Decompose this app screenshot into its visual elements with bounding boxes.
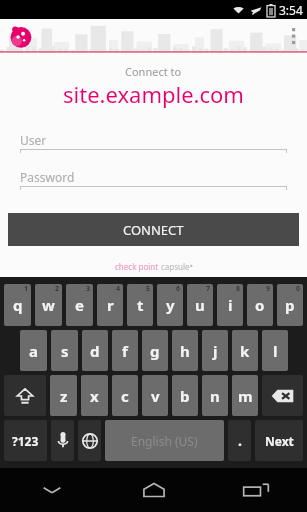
- staticText: 7: [206, 284, 211, 294]
- staticText: q: [13, 295, 23, 315]
- staticText: ?123: [12, 433, 39, 449]
- button[interactable]: f: [112, 330, 138, 371]
- staticText: r: [107, 295, 114, 315]
- button[interactable]: n: [202, 375, 228, 416]
- button[interactable]: v: [142, 375, 168, 416]
- staticText: w: [42, 295, 55, 315]
- staticText: i: [228, 295, 233, 315]
- staticText: 0: [296, 284, 301, 294]
- staticText: s: [61, 341, 69, 361]
- button[interactable]: l: [262, 330, 288, 371]
- button[interactable]: Password: [20, 167, 287, 191]
- button[interactable]: c: [112, 375, 138, 416]
- staticText: o: [255, 295, 265, 315]
- staticText: x: [90, 386, 99, 406]
- staticText: 1: [24, 284, 29, 294]
- staticText: 4: [116, 284, 121, 294]
- staticText: b: [180, 386, 190, 406]
- staticText: 8: [236, 284, 241, 294]
- staticText: f: [122, 341, 128, 361]
- staticText: 3: [86, 284, 91, 294]
- staticText: m: [238, 386, 253, 406]
- staticText: y: [166, 295, 175, 315]
- staticText: •: [190, 262, 193, 272]
- staticText: u: [195, 295, 205, 315]
- button[interactable]: g: [142, 330, 168, 371]
- button[interactable]: Change language: [78, 420, 101, 461]
- staticText: 3:54: [279, 2, 303, 18]
- button[interactable]: k: [232, 330, 258, 371]
- staticText: l: [273, 341, 278, 361]
- staticText: p: [285, 295, 295, 315]
- staticText: c: [121, 386, 129, 406]
- button[interactable]: CONNECT: [8, 213, 299, 246]
- button[interactable]: u: [187, 284, 213, 326]
- button[interactable]: b: [172, 375, 198, 416]
- staticText: j: [213, 341, 218, 361]
- staticText: z: [60, 386, 68, 406]
- button[interactable]: w: [35, 284, 62, 326]
- staticText: v: [151, 386, 160, 406]
- button[interactable]: o: [247, 284, 273, 326]
- staticText: Connect to: [125, 64, 182, 79]
- button[interactable]: s: [51, 330, 78, 371]
- staticText: d: [90, 341, 100, 361]
- staticText: CONNECT: [123, 221, 184, 239]
- button[interactable]: .: [228, 420, 251, 461]
- button[interactable]: i: [217, 284, 243, 326]
- button[interactable]: Shift: [4, 375, 46, 416]
- button[interactable]: y: [157, 284, 183, 326]
- button[interactable]: d: [82, 330, 108, 371]
- button[interactable]: More options: [281, 19, 307, 52]
- button[interactable]: Voice input: [51, 420, 74, 461]
- staticText: h: [180, 341, 190, 361]
- staticText: site.example.com: [63, 79, 244, 109]
- staticText: a: [29, 341, 38, 361]
- button[interactable]: h: [172, 330, 198, 371]
- button[interactable]: Home: [103, 468, 205, 512]
- button[interactable]: User: [20, 130, 287, 154]
- button[interactable]: ?123: [4, 420, 47, 461]
- button[interactable]: q: [4, 284, 31, 326]
- button[interactable]: x: [81, 375, 108, 416]
- staticText: capsule: [161, 261, 190, 272]
- button[interactable]: Recent apps: [205, 468, 307, 512]
- staticText: check point: [115, 261, 161, 272]
- staticText: Password: [20, 169, 75, 185]
- staticText: e: [75, 295, 84, 315]
- staticText: .: [238, 431, 242, 450]
- staticText: k: [240, 341, 250, 361]
- staticText: 2: [55, 284, 60, 294]
- button[interactable]: e: [66, 284, 93, 326]
- button[interactable]: t: [127, 284, 153, 326]
- staticText: Next: [265, 433, 294, 449]
- button[interactable]: English (US): [105, 420, 224, 461]
- button[interactable]: j: [202, 330, 228, 371]
- staticText: English (US): [131, 433, 198, 449]
- staticText: t: [137, 295, 144, 315]
- button[interactable]: p: [277, 284, 303, 326]
- staticText: User: [20, 132, 47, 148]
- staticText: g: [150, 341, 160, 361]
- button[interactable]: Hide keyboard: [0, 468, 103, 512]
- button[interactable]: m: [232, 375, 258, 416]
- button[interactable]: z: [50, 375, 77, 416]
- staticText: 9: [266, 284, 271, 294]
- button[interactable]: Capsule logo: [8, 23, 34, 49]
- staticText: 6: [176, 284, 181, 294]
- button[interactable]: Next: [255, 420, 303, 461]
- button[interactable]: r: [97, 284, 123, 326]
- button[interactable]: Backspace: [262, 375, 303, 416]
- button[interactable]: a: [20, 330, 47, 371]
- staticText: 5: [146, 284, 151, 294]
- staticText: n: [210, 386, 220, 406]
